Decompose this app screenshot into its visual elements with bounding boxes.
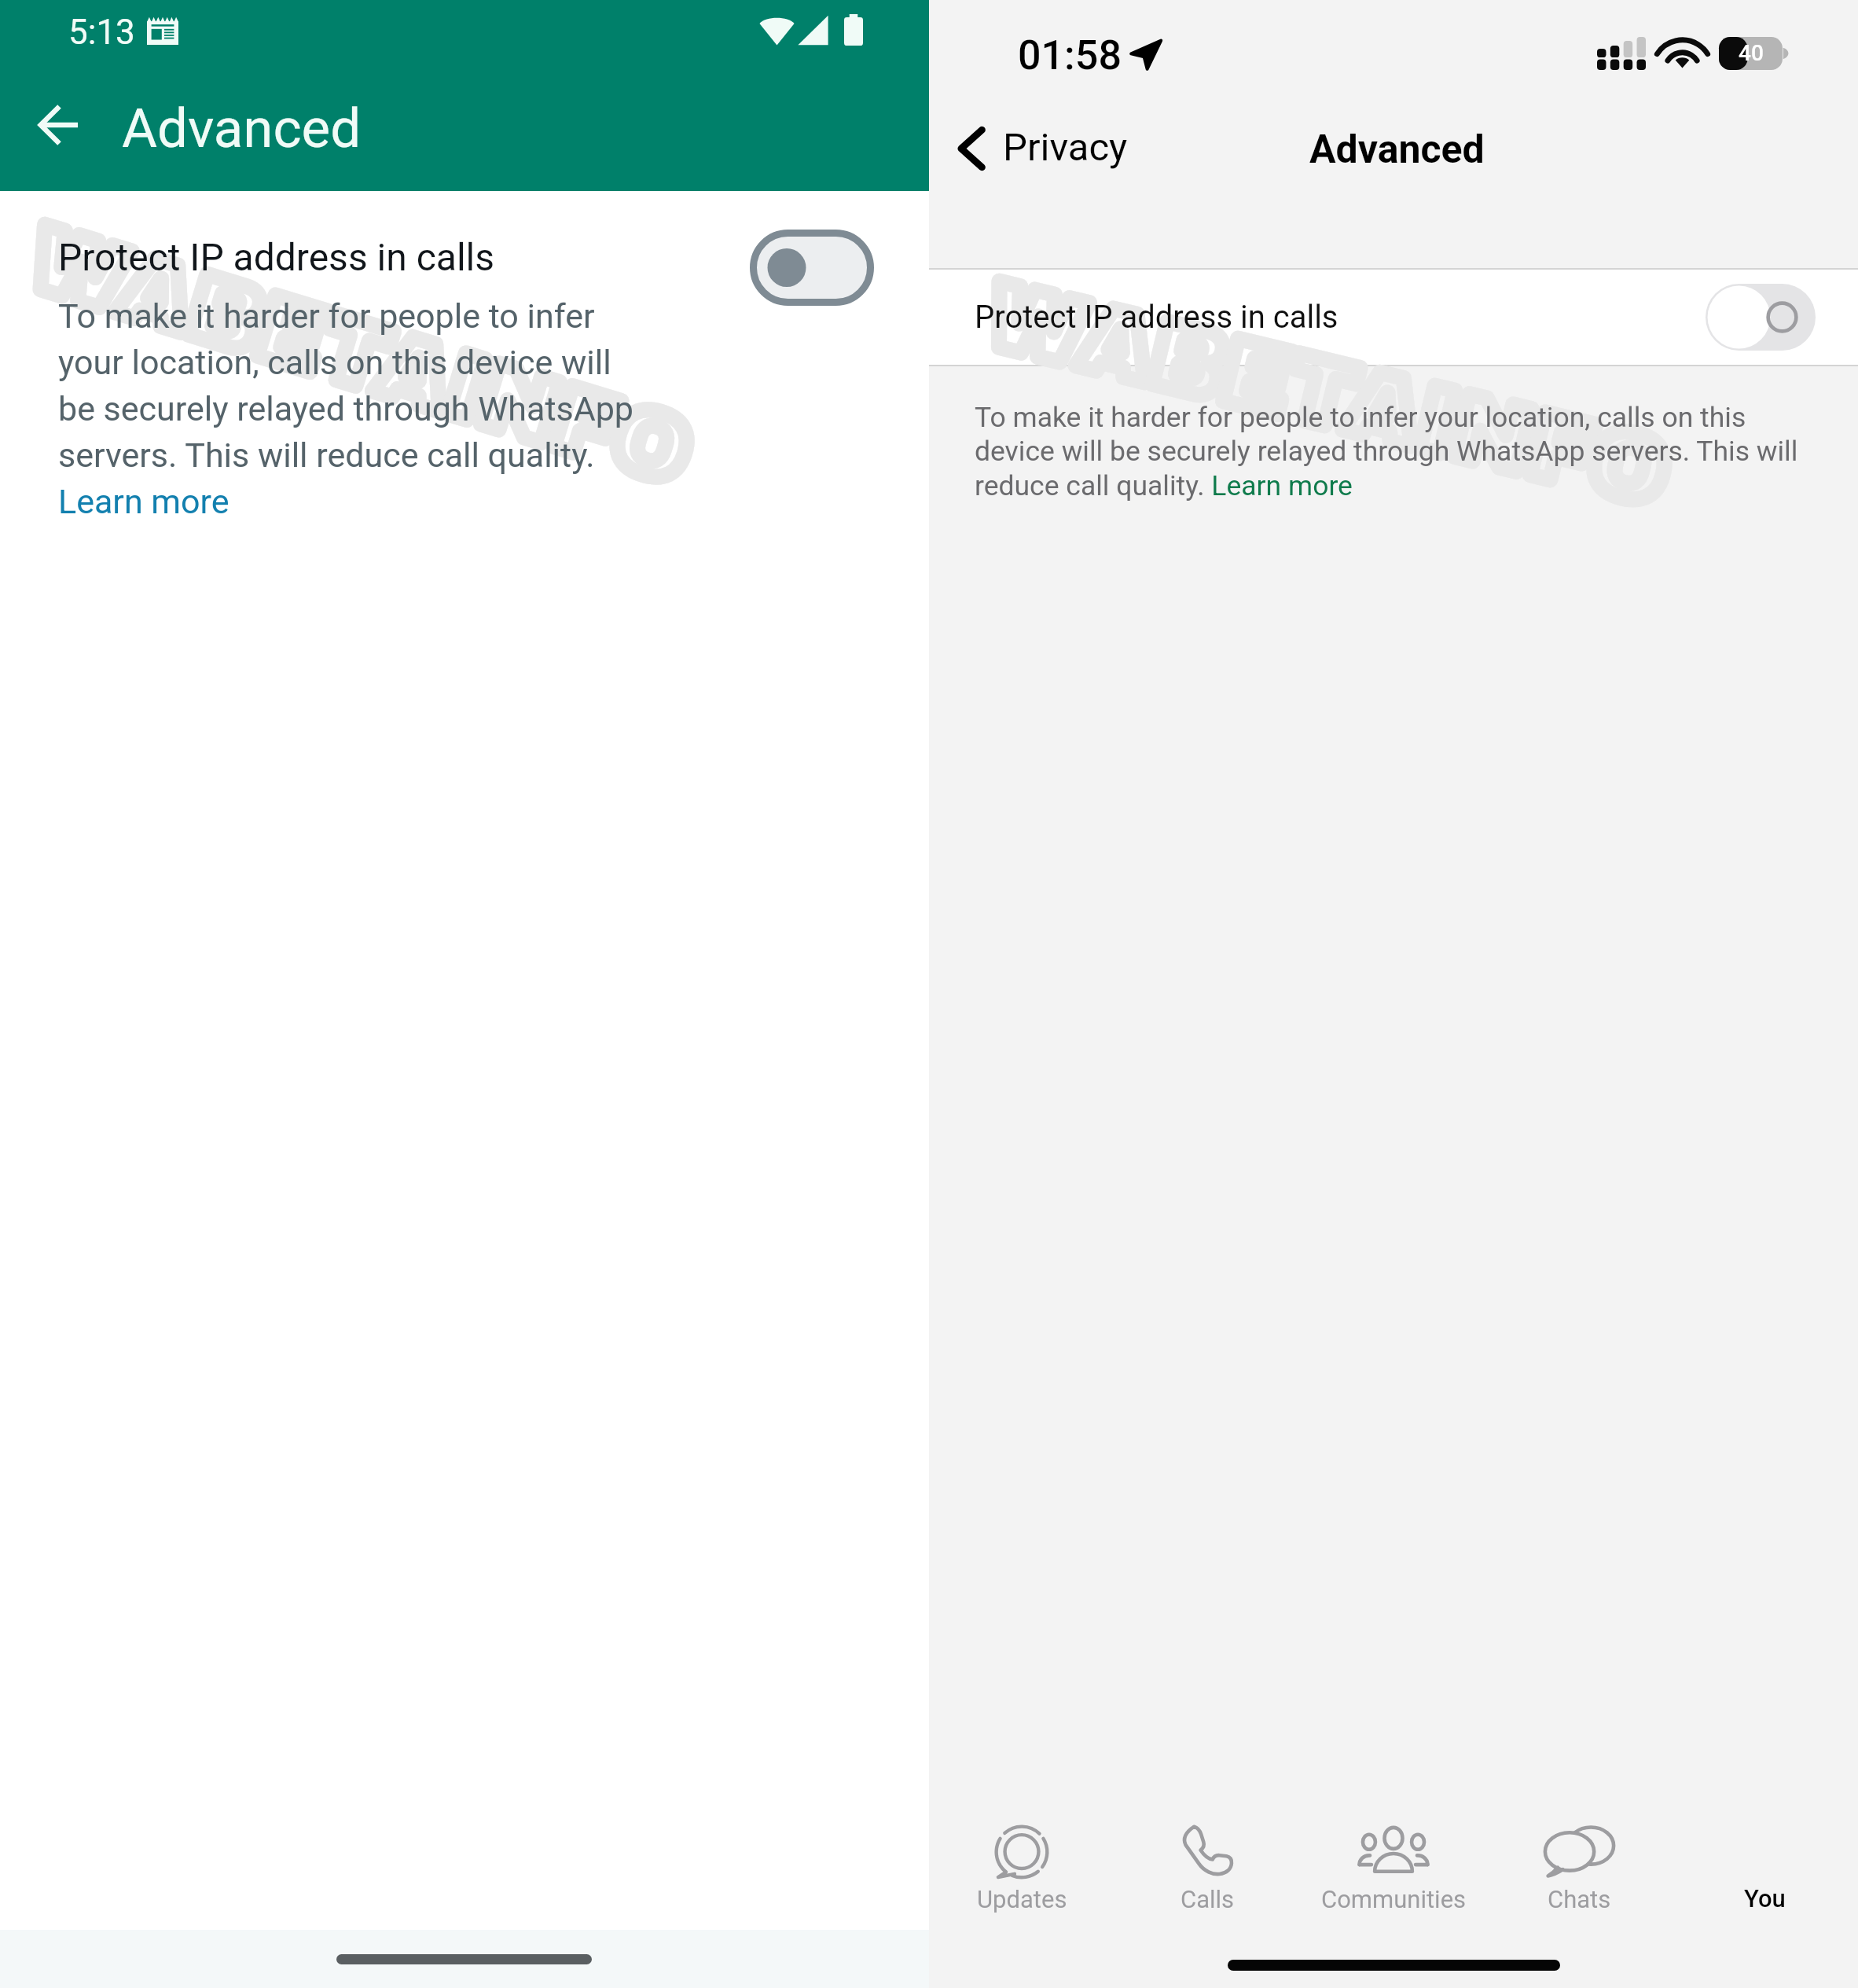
button[interactable]: Protect IP address in calls [929, 270, 1858, 365]
staticText: Chats [1548, 1885, 1611, 1913]
staticText: Privacy [1003, 125, 1128, 170]
staticText: Calls [1181, 1885, 1235, 1913]
staticText: 01:58 [1018, 31, 1122, 79]
button[interactable]: Back [15, 82, 101, 168]
button[interactable]: Protect IP address in calls toggle [750, 230, 874, 306]
button[interactable]: Communities [1301, 1823, 1486, 1925]
staticText: Communities [1321, 1885, 1467, 1913]
button[interactable]: Chats [1486, 1823, 1672, 1925]
button[interactable]: Protect IP address in calls toggle [1706, 284, 1816, 351]
button[interactable]: To make it harder for people to infer yo… [58, 296, 641, 521]
staticText: WABETAINFO [979, 264, 1679, 525]
button[interactable]: Calls [1114, 1823, 1300, 1925]
button[interactable]: Updates [929, 1823, 1114, 1925]
staticText: Protect IP address in calls [975, 299, 1338, 336]
staticText: 40 [1739, 40, 1764, 66]
staticText: Updates [977, 1885, 1067, 1913]
staticText: Advanced [122, 97, 362, 160]
staticText: WABETAINFO [20, 208, 703, 503]
staticText: 5:13 [68, 12, 135, 53]
button[interactable]: Privacy [937, 110, 1157, 189]
button[interactable]: You [1702, 1884, 1827, 1920]
staticText: To make it harder for people to infer yo… [975, 401, 1805, 502]
staticText: You [1744, 1884, 1786, 1913]
staticText: Advanced [1309, 127, 1485, 173]
staticText: Protect IP address in calls [58, 235, 494, 279]
button[interactable] [0, 191, 929, 521]
